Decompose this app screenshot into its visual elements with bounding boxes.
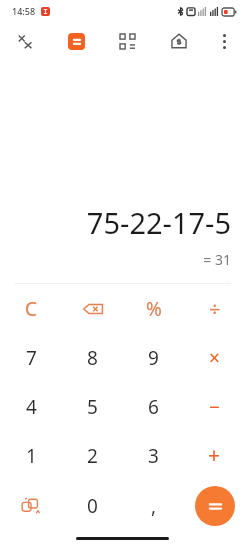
button[interactable]: 1 bbox=[0, 431, 62, 480]
button[interactable]: Convert bbox=[0, 480, 62, 532]
staticText: 1 bbox=[26, 443, 37, 469]
staticText: 8 bbox=[87, 345, 98, 371]
staticText: 0 bbox=[87, 493, 98, 519]
staticText: 7 bbox=[26, 345, 37, 371]
staticText: 4 bbox=[26, 394, 37, 420]
staticText: + bbox=[208, 441, 221, 470]
staticText: C bbox=[25, 296, 38, 322]
staticText: 2 bbox=[87, 443, 98, 469]
staticText: 9 bbox=[148, 345, 159, 371]
staticText: 75-22-17-5 bbox=[86, 203, 231, 242]
button[interactable]: − bbox=[184, 382, 245, 431]
button[interactable]: Backspace bbox=[62, 284, 123, 333]
button[interactable]: Scientific mode bbox=[0, 22, 51, 60]
staticText: − bbox=[209, 394, 220, 420]
button[interactable]: Equals bbox=[195, 486, 235, 526]
button[interactable]: 5 bbox=[62, 382, 123, 431]
staticText: × bbox=[209, 345, 220, 371]
button[interactable]: 2 bbox=[62, 431, 123, 480]
button[interactable]: Converters bbox=[102, 22, 153, 60]
button[interactable]: ÷ bbox=[184, 284, 245, 333]
button[interactable]: 8 bbox=[62, 333, 123, 382]
button[interactable]: 7 bbox=[0, 333, 62, 382]
button[interactable]: + bbox=[184, 431, 245, 480]
staticText: % bbox=[146, 296, 162, 322]
staticText: 3 bbox=[148, 443, 159, 469]
button[interactable]: More options bbox=[204, 22, 245, 60]
staticText: 14:58 bbox=[12, 5, 36, 17]
button[interactable]: , bbox=[123, 480, 184, 532]
button[interactable]: 9 bbox=[123, 333, 184, 382]
button[interactable]: Mortgage bbox=[153, 22, 204, 60]
staticText: , bbox=[151, 493, 157, 519]
staticText: ÷ bbox=[209, 295, 221, 322]
button[interactable]: % bbox=[123, 284, 184, 333]
button[interactable]: 4 bbox=[0, 382, 62, 431]
button[interactable]: 3 bbox=[123, 431, 184, 480]
button[interactable]: 0 bbox=[62, 480, 123, 532]
staticText: = 31 bbox=[203, 250, 231, 269]
button[interactable]: × bbox=[184, 333, 245, 382]
button[interactable]: 6 bbox=[123, 382, 184, 431]
staticText: 6 bbox=[148, 394, 159, 420]
button[interactable]: C bbox=[0, 284, 62, 333]
staticText: 5 bbox=[87, 394, 98, 420]
button[interactable]: Calculator bbox=[51, 22, 102, 60]
